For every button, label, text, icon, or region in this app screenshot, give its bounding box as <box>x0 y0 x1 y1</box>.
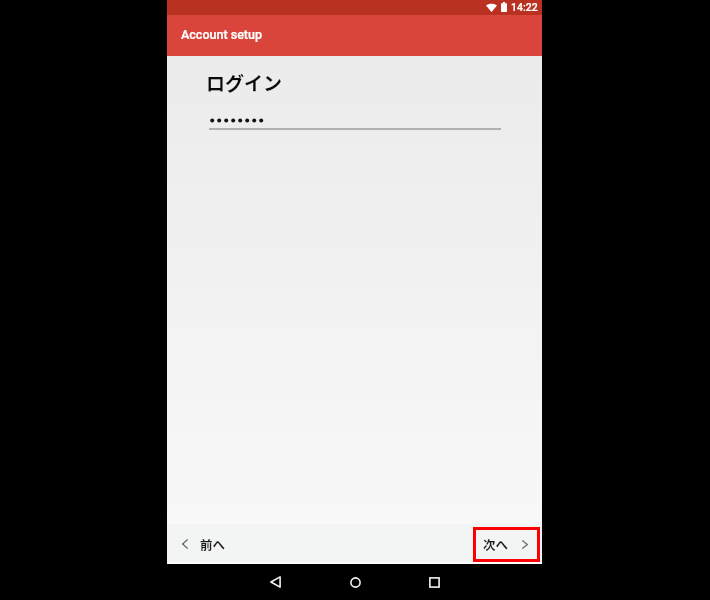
staticText: 次へ <box>483 535 509 553</box>
staticText: Account setup <box>181 27 263 42</box>
button[interactable]: Home <box>337 564 373 600</box>
button[interactable]: 次へ <box>476 530 537 559</box>
other: Wi-Fi <box>486 3 497 12</box>
other: Battery <box>501 2 507 12</box>
staticText: 前へ <box>200 535 226 553</box>
button[interactable]: Password field <box>209 118 265 123</box>
button[interactable]: Back <box>257 564 293 600</box>
staticText: ログイン <box>206 69 283 97</box>
button[interactable]: Recent apps <box>416 564 452 600</box>
button[interactable]: 前へ <box>167 528 240 558</box>
staticText: 14:22 <box>511 1 538 13</box>
